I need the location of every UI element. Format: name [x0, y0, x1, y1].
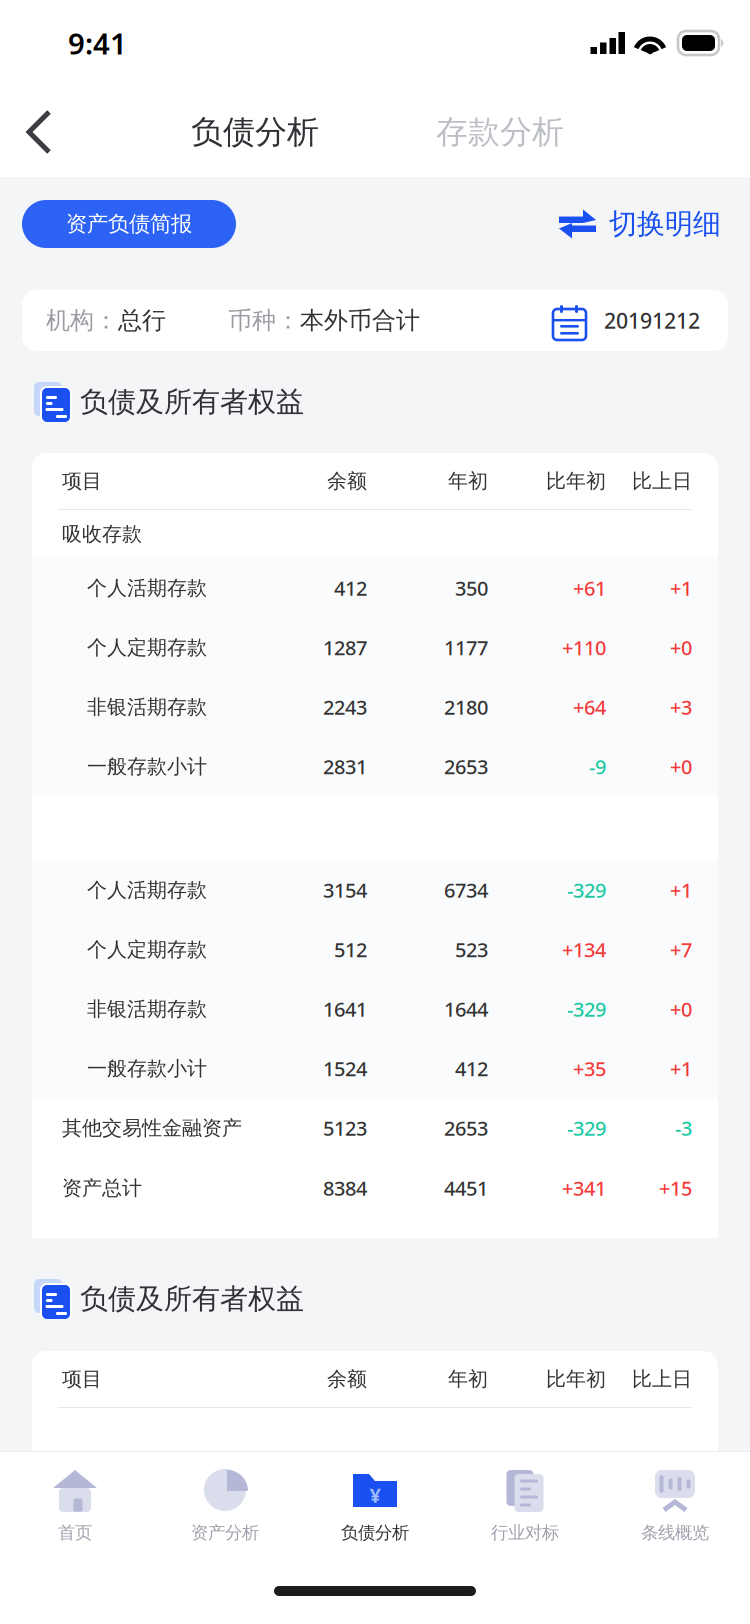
- staticText: 2831: [323, 753, 367, 780]
- staticText: 非银活期存款: [87, 695, 207, 719]
- staticText: 项目: [62, 1367, 102, 1391]
- staticText: -329: [567, 1115, 606, 1141]
- staticText: 币种：: [228, 306, 300, 335]
- staticText: 余额: [327, 1367, 367, 1391]
- staticText: 负债分析: [191, 112, 319, 152]
- staticText: 1524: [323, 1055, 367, 1082]
- staticText: 20191212: [604, 306, 700, 335]
- staticText: +0: [670, 634, 692, 661]
- staticText: 2180: [444, 694, 488, 720]
- staticText: +0: [670, 753, 692, 780]
- button[interactable]: 首页: [0, 1452, 150, 1557]
- staticText: 一般存款小计: [87, 1056, 207, 1081]
- staticText: 8384: [323, 1175, 367, 1201]
- staticText: 5123: [323, 1115, 367, 1141]
- staticText: +35: [573, 1055, 606, 1082]
- staticText: 1287: [323, 634, 367, 661]
- staticText: 比上日: [632, 1367, 692, 1391]
- staticText: 一般存款小计: [87, 754, 207, 779]
- staticText: 1641: [323, 996, 367, 1022]
- staticText: +110: [562, 634, 606, 661]
- staticText: 个人定期存款: [87, 937, 207, 962]
- staticText: +134: [562, 936, 606, 963]
- staticText: 3154: [323, 877, 367, 903]
- staticText: 条线概览: [641, 1522, 709, 1543]
- staticText: 6734: [444, 877, 488, 903]
- staticText: -329: [567, 996, 606, 1022]
- staticText: 年初: [448, 469, 488, 493]
- staticText: +15: [659, 1175, 692, 1201]
- staticText: 个人活期存款: [87, 878, 207, 902]
- staticText: 9:41: [68, 23, 127, 62]
- staticText: +1: [670, 575, 692, 601]
- staticText: 1644: [444, 996, 488, 1022]
- button[interactable]: 存款分析: [424, 87, 576, 177]
- staticText: 负债及所有者权益: [80, 385, 304, 419]
- staticText: 年初: [448, 1367, 488, 1391]
- staticText: +0: [670, 996, 692, 1022]
- staticText: 机构：: [46, 306, 118, 335]
- staticText: 切换明细: [609, 207, 721, 241]
- staticText: 比年初: [546, 469, 606, 493]
- staticText: 首页: [58, 1522, 92, 1543]
- staticText: -3: [675, 1115, 692, 1141]
- staticText: 其他交易性金融资产: [62, 1116, 242, 1140]
- staticText: +3: [670, 694, 692, 720]
- staticText: 吸收存款: [62, 522, 142, 546]
- staticText: +1: [670, 1055, 692, 1082]
- staticText: 余额: [327, 469, 367, 493]
- staticText: 523: [455, 936, 488, 963]
- staticText: 比年初: [546, 1367, 606, 1391]
- staticText: 412: [334, 575, 367, 601]
- staticText: +1: [670, 877, 692, 903]
- button[interactable]: 切换明细: [559, 200, 721, 248]
- button[interactable]: 资产分析: [150, 1452, 300, 1557]
- staticText: 个人定期存款: [87, 635, 207, 660]
- staticText: 总行: [118, 306, 166, 335]
- staticText: 资产负债简报: [66, 211, 192, 237]
- staticText: +64: [573, 694, 606, 720]
- staticText: 比上日: [632, 469, 692, 493]
- button[interactable]: 条线概览: [600, 1452, 750, 1557]
- button[interactable]: 20191212: [549, 302, 700, 339]
- staticText: 存款分析: [436, 112, 564, 152]
- staticText: 非银活期存款: [87, 997, 207, 1021]
- button[interactable]: 资产负债简报: [22, 200, 236, 248]
- button[interactable]: 行业对标: [450, 1452, 600, 1557]
- staticText: -9: [589, 753, 606, 780]
- staticText: +61: [573, 575, 606, 601]
- staticText: 512: [334, 936, 367, 963]
- staticText: 4451: [444, 1175, 488, 1201]
- staticText: -329: [567, 877, 606, 903]
- staticText: 资产分析: [191, 1522, 259, 1543]
- staticText: 资产总计: [62, 1176, 142, 1200]
- button[interactable]: 返回: [0, 87, 75, 177]
- staticText: 2243: [323, 694, 367, 720]
- button[interactable]: 负债分析: [179, 87, 331, 177]
- staticText: +7: [670, 936, 692, 963]
- staticText: 350: [455, 575, 488, 601]
- staticText: 2653: [444, 753, 488, 780]
- staticText: 个人活期存款: [87, 576, 207, 600]
- staticText: +341: [562, 1175, 606, 1201]
- staticText: 412: [455, 1055, 488, 1082]
- staticText: 本外币合计: [300, 306, 420, 335]
- staticText: 1177: [444, 634, 488, 661]
- staticText: 项目: [62, 469, 102, 493]
- staticText: 行业对标: [491, 1522, 559, 1543]
- button[interactable]: ¥: [300, 1452, 450, 1557]
- staticText: 2653: [444, 1115, 488, 1141]
- staticText: 负债分析: [341, 1522, 409, 1543]
- staticText: 负债及所有者权益: [80, 1282, 304, 1316]
- staticText: ¥: [369, 1482, 380, 1508]
